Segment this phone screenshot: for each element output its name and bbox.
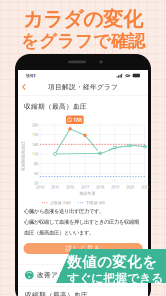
staticText: 170 xyxy=(32,132,38,137)
staticText: 140 xyxy=(32,142,38,147)
staticText: 下限値 (40) xyxy=(85,200,104,205)
staticText: 2014 xyxy=(36,184,44,190)
staticText: 血圧（最高血圧）といいます。 xyxy=(24,229,94,236)
staticText: 2017 xyxy=(81,184,89,190)
staticText: 188 xyxy=(73,116,82,123)
button[interactable]: 詳しく見る xyxy=(23,243,142,254)
staticText: すぐに把握できる！ xyxy=(67,271,166,286)
staticText: 数値の変化を xyxy=(67,253,157,271)
staticText: 2019 xyxy=(111,184,119,190)
staticText: 心臓が収縮して血液を押し出すときの圧力を収縮期 xyxy=(24,219,139,225)
staticText: 2021 xyxy=(141,184,149,190)
staticText: 200 xyxy=(32,122,38,128)
staticText: 収縮期（最高）血圧 xyxy=(25,291,88,296)
staticText: 80 xyxy=(34,161,38,166)
staticText: 110 xyxy=(32,151,38,157)
staticText: 50 xyxy=(34,171,38,176)
staticText: 20 xyxy=(34,180,38,186)
staticText: 項目解説・経年グラフ xyxy=(48,83,118,91)
staticText: 収縮期（最高）血圧 xyxy=(24,102,87,111)
staticText: 収縮期(最高)血圧 xyxy=(8,153,38,159)
button[interactable]: 改善アドバイスを見る xyxy=(18,264,148,286)
staticText: 検診年度 xyxy=(79,191,95,196)
staticText: 詳しく見る xyxy=(65,244,100,253)
staticText: 2020 xyxy=(126,184,134,190)
staticText: 2015 xyxy=(51,184,59,190)
staticText: ! xyxy=(69,117,70,122)
staticText: カラダの変化 xyxy=(23,7,143,32)
staticText: をグラフで確認 xyxy=(21,31,145,52)
staticText: 上限値 (140) xyxy=(50,200,71,205)
staticText: 9:41 xyxy=(26,72,36,79)
staticText: 心臓から血液を送り出す圧力です。 xyxy=(24,208,104,215)
staticText: 改善アドバイスを見る xyxy=(37,271,107,279)
staticText: 2018 xyxy=(96,184,104,190)
staticText: 2016 xyxy=(66,184,74,190)
button[interactable]: Back xyxy=(18,81,30,93)
